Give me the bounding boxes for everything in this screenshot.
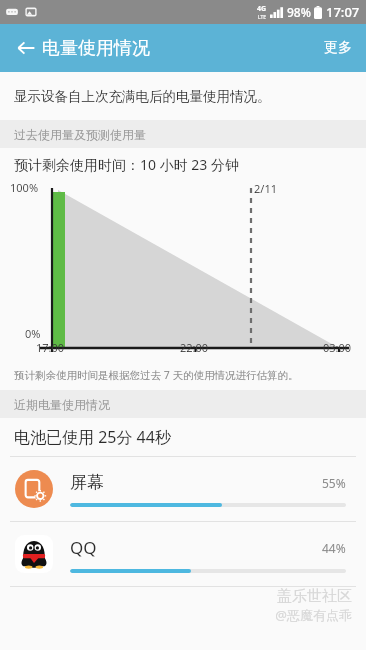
staticText: 预计剩余使用时间是根据您过去 7 天的使用情况进行估算的。	[14, 368, 299, 382]
button[interactable]: QQ	[0, 522, 366, 586]
staticText: 03:00	[323, 340, 352, 355]
staticText: 100%	[10, 180, 39, 195]
staticText: 17:07	[326, 3, 360, 21]
staticText: 预计剩余使用时间：10 小时 23 分钟	[14, 155, 239, 174]
staticText: 显示设备自上次充满电后的电量使用情况。	[14, 88, 271, 105]
staticText: 44%	[322, 540, 346, 556]
staticText: 22:00	[180, 340, 209, 355]
staticText: LTE	[258, 14, 267, 21]
staticText: 更多	[324, 39, 352, 57]
staticText: 4G	[257, 4, 267, 14]
staticText: 17:00	[36, 340, 65, 355]
staticText: 近期电量使用情况	[14, 397, 110, 412]
staticText: 2/11	[254, 181, 277, 196]
staticText: QQ	[70, 536, 322, 559]
button[interactable]: 更多	[310, 27, 366, 69]
staticText: 过去使用量及预测使用量	[14, 127, 146, 142]
button[interactable]: Back	[8, 30, 44, 66]
staticText: @恶魔有点乖	[275, 606, 352, 624]
staticText: 盖乐世社区	[277, 587, 352, 606]
staticText: 屏幕	[70, 472, 322, 493]
staticText: 55%	[322, 475, 346, 491]
staticText: 电量使用情况	[42, 37, 150, 60]
button[interactable]: 屏幕	[0, 457, 366, 521]
staticText: 电池已使用 25分 44秒	[14, 426, 171, 448]
staticText: 0%	[25, 326, 41, 341]
staticText: 98%	[287, 4, 311, 20]
